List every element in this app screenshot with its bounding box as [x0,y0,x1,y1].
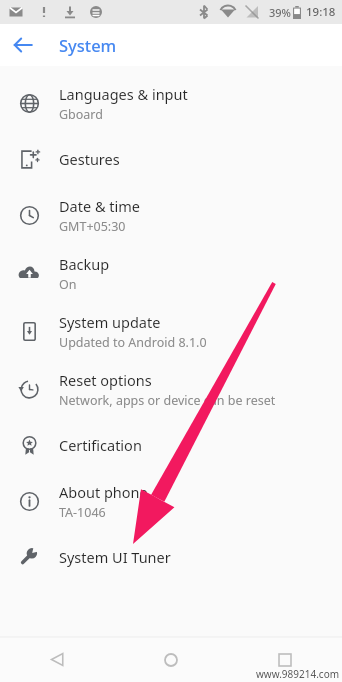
staticText: System update [59,312,161,332]
button[interactable]: Back [0,637,114,682]
button[interactable]: Back [10,32,36,58]
staticText: System UI Tuner [59,547,171,567]
staticText: www.989214.com [256,667,340,681]
staticText: About phone [59,482,148,502]
button[interactable]: Gestures [0,132,342,186]
staticText: Backup [59,254,110,274]
staticText: Network, apps or device can be reset [59,392,276,409]
staticText: 19:18 [306,4,336,20]
button[interactable]: Recent apps [228,637,342,682]
button[interactable]: System update [0,302,342,360]
staticText: On [59,276,77,293]
staticText: 39% [269,5,291,20]
staticText: Date & time [59,196,140,216]
staticText: TA-1046 [59,504,106,521]
staticText: Updated to Android 8.1.0 [59,334,207,351]
staticText: Reset options [59,370,152,390]
button[interactable]: System UI Tuner [0,530,342,584]
staticText: Gboard [59,106,103,123]
button[interactable]: Languages & input [0,74,342,132]
button[interactable]: Reset options [0,360,342,418]
staticText: System [59,34,117,56]
staticText: GMT+05:30 [59,218,126,235]
button[interactable]: Date & time [0,186,342,244]
button[interactable]: Certification [0,418,342,472]
staticText: Languages & input [59,84,188,104]
button[interactable]: Backup [0,244,342,302]
staticText: Certification [59,435,142,455]
button[interactable]: Home [114,637,228,682]
button[interactable]: About phone [0,472,342,530]
staticText: Gestures [59,149,120,169]
